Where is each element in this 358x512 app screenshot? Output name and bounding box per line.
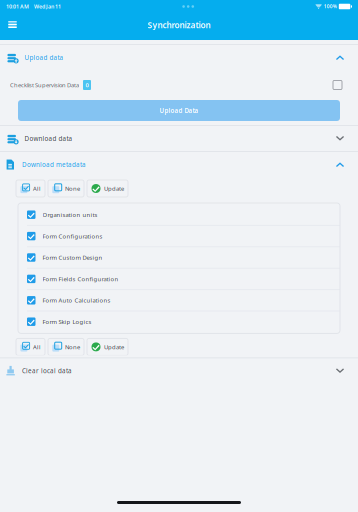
staticText: Form Configurations <box>42 232 102 240</box>
staticText: Update <box>104 184 124 192</box>
staticText: 10:01 AM <box>6 3 29 10</box>
staticText: 0 <box>85 81 88 89</box>
staticText: Form Fields Configuration <box>42 275 118 283</box>
button[interactable]: Update <box>87 180 128 197</box>
button[interactable]: Upload Data <box>18 100 340 121</box>
staticText: Form Custom Design <box>42 253 102 261</box>
button[interactable]: Form Fields Configuration <box>18 269 340 290</box>
button[interactable]: All <box>16 180 45 197</box>
button[interactable]: Form Configurations <box>18 226 340 247</box>
staticText: Clear local data <box>22 367 72 375</box>
button[interactable]: Clear local data <box>0 358 358 383</box>
button[interactable]: Upload data <box>0 45 358 70</box>
button[interactable]: Checklist Supervision Data <box>0 70 358 100</box>
button[interactable]: Organisation units <box>18 204 340 226</box>
staticText: 100% <box>324 3 337 10</box>
staticText: None <box>65 184 80 192</box>
staticText: Form Skip Logics <box>42 318 91 326</box>
staticText: All <box>33 343 41 351</box>
button[interactable]: Menu <box>0 13 25 36</box>
button[interactable]: Download metadata <box>0 152 358 177</box>
button[interactable]: Form Custom Design <box>18 247 340 269</box>
staticText: Organisation units <box>42 211 97 219</box>
staticText: Upload Data <box>159 106 198 115</box>
staticText: All <box>33 184 41 192</box>
button[interactable]: None <box>48 338 84 355</box>
staticText: Download data <box>24 134 72 143</box>
staticText: None <box>65 343 80 351</box>
staticText: Update <box>104 343 124 351</box>
button[interactable]: Download data <box>0 126 358 151</box>
button[interactable]: Form Skip Logics <box>18 311 340 332</box>
staticText: Upload data <box>24 53 63 62</box>
button[interactable]: Form Auto Calculations <box>18 290 340 311</box>
staticText: Checklist Supervision Data <box>10 81 79 89</box>
staticText: Synchronization <box>147 19 210 31</box>
staticText: Form Auto Calculations <box>42 296 110 304</box>
button[interactable]: None <box>48 180 84 197</box>
staticText: Wed Jan 11 <box>34 3 61 10</box>
button[interactable]: All <box>16 338 45 355</box>
button[interactable]: Update <box>87 338 128 355</box>
staticText: Download metadata <box>22 160 86 169</box>
